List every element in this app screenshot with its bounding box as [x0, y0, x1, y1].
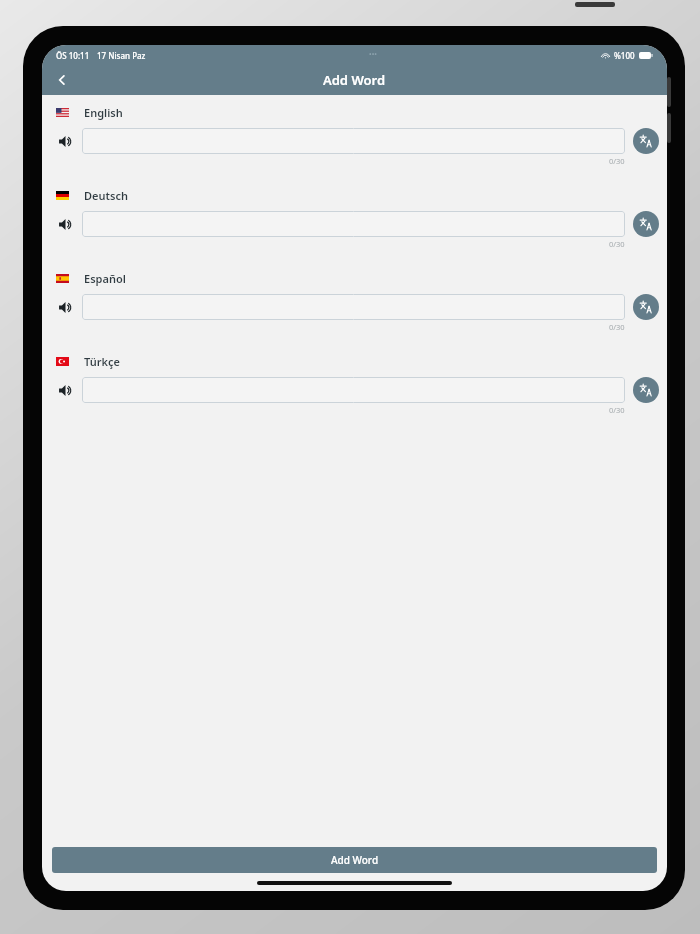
button[interactable]	[82, 211, 625, 237]
button[interactable]: Back	[49, 67, 75, 93]
button[interactable]	[82, 377, 625, 403]
staticText: 0/30	[609, 156, 625, 166]
staticText: 0/30	[609, 405, 625, 415]
button[interactable]: Translate	[633, 211, 659, 237]
button[interactable]	[82, 128, 625, 154]
button[interactable]: Speak	[54, 296, 76, 318]
button[interactable]	[82, 294, 625, 320]
button[interactable]: Translate	[633, 377, 659, 403]
staticText: 0/30	[609, 322, 625, 332]
button[interactable]: Speak	[54, 379, 76, 401]
staticText: Türkçe	[84, 354, 120, 369]
staticText: Add Word	[323, 71, 386, 89]
staticText: %100	[614, 50, 635, 61]
button[interactable]: Add Word	[52, 847, 657, 873]
staticText: ÖS 10:11	[56, 50, 90, 61]
staticText: Deutsch	[84, 188, 128, 203]
button[interactable]: Translate	[633, 294, 659, 320]
staticText: 0/30	[609, 239, 625, 249]
button[interactable]: Speak	[54, 213, 76, 235]
staticText: Add Word	[331, 853, 379, 867]
staticText: English	[84, 105, 123, 120]
button[interactable]: Speak	[54, 130, 76, 152]
staticText: 17 Nisan Paz	[97, 50, 146, 61]
staticText: •••	[369, 50, 377, 60]
staticText: Español	[84, 271, 126, 286]
button[interactable]: Translate	[633, 128, 659, 154]
